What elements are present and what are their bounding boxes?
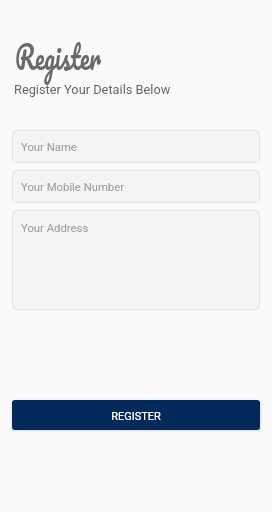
button[interactable]: Your Address <box>12 210 260 310</box>
staticText: Your Name <box>21 141 77 154</box>
button[interactable]: Your Name <box>12 130 260 163</box>
staticText: REGISTER <box>111 410 161 423</box>
staticText: Register <box>15 28 101 84</box>
staticText: Your Mobile Number <box>21 181 125 194</box>
staticText: Register Your Details Below <box>14 82 171 97</box>
button[interactable]: Your Mobile Number <box>12 170 260 203</box>
staticText: Your Address <box>21 222 89 235</box>
button[interactable]: REGISTER <box>12 400 260 430</box>
